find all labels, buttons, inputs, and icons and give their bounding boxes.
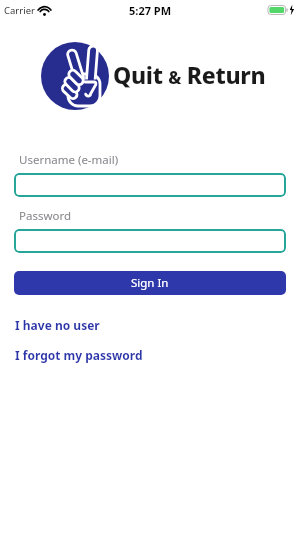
button[interactable]: I have no user: [15, 317, 100, 333]
staticText: Carrier: [4, 4, 35, 17]
staticText: 5:27 PM: [129, 3, 172, 18]
staticText: Password: [19, 208, 72, 224]
staticText: Username (e-mail): [19, 152, 119, 168]
button[interactable]: [14, 229, 286, 253]
button[interactable]: Sign In: [14, 271, 286, 295]
button[interactable]: [14, 173, 286, 197]
button[interactable]: I forgot my password: [15, 347, 143, 363]
staticText: Quit & Return: [113, 59, 266, 90]
staticText: Sign In: [131, 275, 169, 291]
